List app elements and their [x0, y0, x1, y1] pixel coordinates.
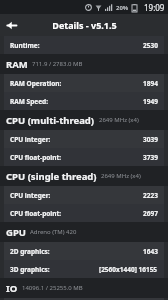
staticText: Adreno (TM) 420: [30, 228, 77, 236]
staticText: 2D graphics:: [10, 247, 50, 256]
staticText: CPU float-point:: [10, 153, 62, 162]
staticText: 2223: [143, 191, 158, 200]
staticText: Details - v5.1.5: [52, 19, 117, 31]
staticText: 2697: [143, 209, 158, 218]
staticText: 2530: [143, 41, 158, 50]
button[interactable]: CPU integer:: [4, 130, 164, 148]
button[interactable]: RAM: [0, 54, 168, 74]
staticText: 20%: [116, 4, 129, 12]
button[interactable]: CPU float-point:: [4, 148, 164, 166]
staticText: 14096.1 / 25255.0 MB: [22, 284, 83, 292]
staticText: RAM Speed:: [10, 97, 48, 106]
button[interactable]: CPU (multi-thread): [0, 110, 168, 130]
staticText: CPU integer:: [10, 191, 51, 200]
staticText: Runtime:: [10, 41, 40, 50]
button[interactable]: RAM Operation:: [4, 74, 164, 92]
button[interactable]: CPU integer:: [4, 186, 164, 204]
staticText: 1949: [143, 97, 158, 106]
staticText: 3739: [143, 153, 158, 162]
button[interactable]: IO: [0, 278, 168, 298]
staticText: [2560x1440] 16155: [99, 265, 158, 274]
staticText: 2649 MHz (x4): [101, 172, 141, 180]
staticText: CPU (single thread): [6, 170, 97, 183]
button[interactable]: CPU float-point:: [4, 204, 164, 222]
staticText: IO: [6, 282, 18, 295]
button[interactable]: CPU (single thread): [0, 166, 168, 186]
staticText: GPU: [6, 226, 26, 239]
staticText: 711.9 / 2783.0 MB: [32, 60, 83, 68]
button[interactable]: 3D graphics:: [4, 260, 164, 278]
button[interactable]: RAM Speed:: [4, 92, 164, 110]
staticText: CPU integer:: [10, 135, 51, 144]
staticText: 1894: [143, 79, 158, 88]
button[interactable]: Back: [0, 14, 22, 36]
staticText: 19:09: [144, 2, 165, 13]
staticText: 1643: [143, 247, 158, 256]
button[interactable]: 2D graphics:: [4, 242, 164, 260]
button[interactable]: Runtime:: [4, 36, 164, 54]
staticText: 3039: [143, 135, 158, 144]
staticText: 2649 MHz (x4): [99, 116, 139, 124]
staticText: RAM: [6, 58, 28, 71]
staticText: CPU (multi-thread): [6, 114, 95, 127]
button[interactable]: GPU: [0, 222, 168, 242]
staticText: RAM Operation:: [10, 79, 62, 88]
staticText: CPU float-point:: [10, 209, 62, 218]
staticText: 3D graphics:: [10, 265, 50, 274]
